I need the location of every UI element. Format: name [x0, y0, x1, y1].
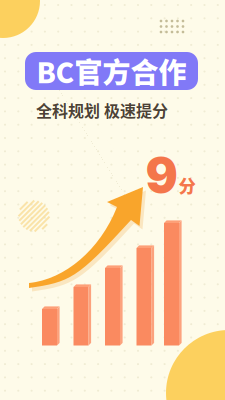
staticText: 分 [178, 172, 195, 198]
staticText: 9 [145, 146, 177, 204]
staticText: 全科规划 极速提分 [36, 98, 168, 122]
button[interactable]: BC官方合作 [25, 52, 198, 90]
staticText: BC官方合作 [36, 51, 186, 91]
